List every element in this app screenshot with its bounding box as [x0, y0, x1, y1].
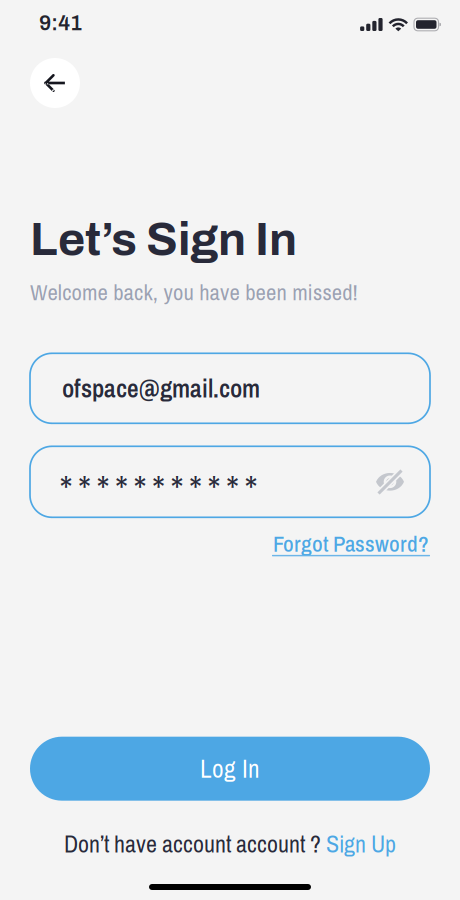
- staticText: Let’s Sign In: [30, 214, 297, 265]
- button[interactable]: Sign Up: [326, 828, 396, 860]
- staticText: *: [115, 470, 129, 506]
- button[interactable]: Show password: [372, 466, 408, 498]
- staticText: *: [152, 470, 166, 506]
- staticText: ofspace@gmail.com: [62, 371, 260, 405]
- staticText: *: [78, 470, 92, 506]
- staticText: Welcome back, you have been missed!: [30, 277, 358, 307]
- staticText: *: [59, 470, 73, 506]
- button[interactable]: Back: [30, 58, 80, 108]
- staticText: *: [170, 470, 184, 506]
- staticText: Sign Up: [326, 828, 396, 860]
- button[interactable]: Log In: [30, 737, 430, 801]
- staticText: Forgot Password?: [273, 528, 429, 559]
- staticText: Log In: [200, 752, 260, 786]
- staticText: *: [189, 470, 203, 506]
- staticText: *: [244, 470, 258, 506]
- staticText: 9:41: [39, 11, 82, 35]
- staticText: *: [96, 470, 110, 506]
- staticText: Don’t have account account ?: [64, 828, 326, 860]
- staticText: *: [226, 470, 240, 506]
- button[interactable]: Forgot Password?: [272, 528, 430, 556]
- staticText: *: [133, 470, 147, 506]
- staticText: *: [207, 470, 221, 506]
